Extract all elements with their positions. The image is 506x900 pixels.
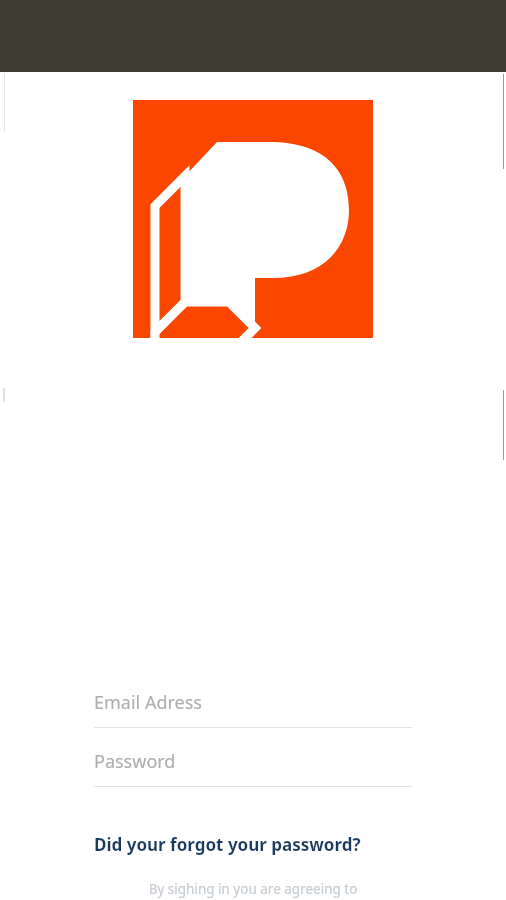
staticText: By sighing in you are agreeing to the Li… [100, 880, 406, 900]
button[interactable]: Password [0, 749, 506, 787]
staticText: Email Adress [94, 690, 202, 715]
staticText: Did your forgot your password? [94, 833, 361, 856]
other: App logo [133, 100, 373, 338]
staticText: Password [94, 749, 176, 774]
button[interactable]: Email Adress [0, 690, 506, 728]
button[interactable]: By sighing in you are agreeing to the Li… [0, 880, 506, 900]
button[interactable]: Did your forgot your password? [0, 829, 506, 860]
